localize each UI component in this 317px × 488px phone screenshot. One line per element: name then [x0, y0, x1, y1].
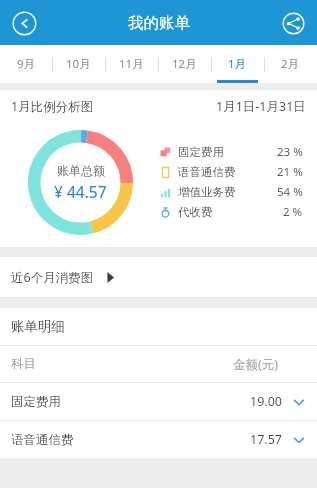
- button[interactable]: 10月: [52, 45, 105, 83]
- staticText: 23 %: [277, 144, 303, 160]
- staticText: 代收费: [178, 205, 213, 219]
- staticText: 金额(元): [233, 356, 279, 373]
- button[interactable]: 代收费: [160, 202, 303, 222]
- staticText: 11月: [119, 56, 144, 72]
- staticText: 1月比例分析图: [11, 98, 94, 115]
- staticText: 固定费用: [11, 394, 61, 410]
- button[interactable]: 1月: [211, 45, 264, 83]
- staticText: 固定费用: [178, 145, 224, 159]
- staticText: 2 %: [283, 204, 303, 220]
- staticText: 账单总额: [57, 163, 105, 178]
- button[interactable]: Share: [277, 7, 309, 39]
- staticText: 语音通信费: [178, 165, 236, 179]
- button[interactable]: 固定费用: [0, 383, 317, 420]
- button[interactable]: 11月: [105, 45, 158, 83]
- staticText: 17.57: [250, 431, 282, 448]
- staticText: 9月: [17, 56, 36, 72]
- staticText: ¥ 44.57: [54, 181, 107, 202]
- staticText: 我的账单: [128, 13, 190, 33]
- staticText: 54 %: [277, 184, 303, 200]
- staticText: 1月1日-1月31日: [216, 98, 306, 115]
- staticText: 19.00: [250, 393, 282, 410]
- staticText: 科目: [11, 356, 36, 372]
- staticText: 1月: [228, 56, 247, 72]
- staticText: 10月: [66, 56, 91, 72]
- button[interactable]: 2月: [264, 45, 317, 83]
- staticText: 账单明细: [11, 318, 65, 335]
- staticText: 近6个月消费图: [11, 269, 94, 286]
- button[interactable]: 语音通信费: [160, 162, 303, 182]
- staticText: 增值业务费: [178, 185, 236, 199]
- button[interactable]: 语音通信费: [0, 421, 317, 458]
- button[interactable]: 9月: [0, 45, 52, 83]
- staticText: 2月: [281, 56, 300, 72]
- button[interactable]: Back: [8, 7, 40, 39]
- staticText: 21 %: [277, 164, 303, 180]
- staticText: 12月: [172, 56, 197, 72]
- button[interactable]: 12月: [158, 45, 211, 83]
- button[interactable]: 近6个月消费图: [0, 257, 317, 297]
- button[interactable]: 增值业务费: [160, 182, 303, 202]
- staticText: 语音通信费: [11, 432, 74, 448]
- button[interactable]: 固定费用: [160, 142, 303, 162]
